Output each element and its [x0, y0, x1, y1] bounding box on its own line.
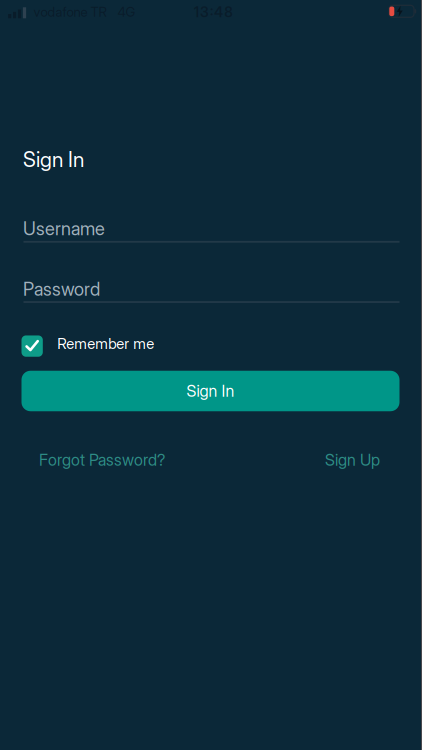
staticText: Sign Up: [325, 450, 380, 470]
staticText: Sign In: [186, 381, 234, 401]
button[interactable]: Username: [23, 218, 399, 243]
staticText: Username: [23, 218, 105, 240]
staticText: Sign In: [23, 147, 84, 172]
staticText: Remember me: [57, 335, 154, 353]
button[interactable]: Remember me: [21, 335, 154, 357]
staticText: vodafone TR: [33, 4, 106, 20]
button[interactable]: Sign Up: [325, 450, 380, 470]
button[interactable]: Forgot Password?: [39, 450, 165, 470]
staticText: Forgot Password?: [39, 450, 165, 470]
button[interactable]: Password: [23, 278, 399, 303]
button[interactable]: Sign In: [21, 371, 399, 411]
staticText: 4G: [117, 4, 135, 20]
staticText: 13:48: [194, 3, 233, 20]
staticText: Password: [23, 278, 100, 300]
